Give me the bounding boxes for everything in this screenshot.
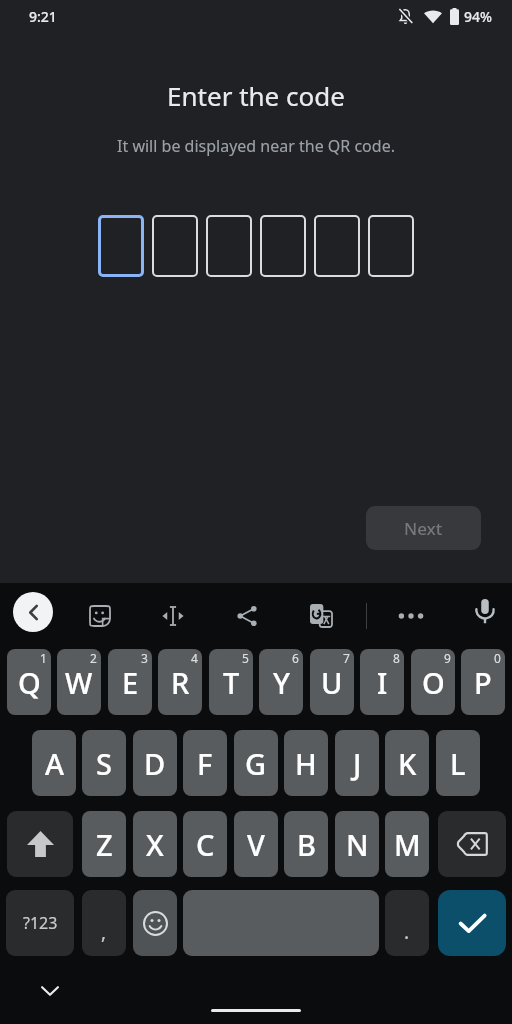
staticText: 0 (494, 650, 501, 666)
button[interactable] (314, 215, 360, 277)
button[interactable]: . (385, 890, 429, 956)
staticText: It will be displayed near the QR code. (0, 135, 512, 157)
staticText: C (196, 825, 215, 864)
staticText: 5 (242, 650, 249, 666)
staticText: U (321, 663, 343, 702)
staticText: Next (404, 517, 443, 540)
button[interactable] (206, 215, 252, 277)
button[interactable]: I (360, 649, 404, 715)
staticText: N (346, 825, 369, 864)
staticText: O (422, 663, 445, 702)
button[interactable]: ?123 (6, 890, 74, 956)
button[interactable]: E (108, 649, 152, 715)
button[interactable]: , (82, 890, 126, 956)
staticText: A (45, 744, 64, 783)
button[interactable] (13, 592, 53, 632)
staticText: D (144, 744, 166, 783)
button[interactable]: L (436, 730, 480, 796)
button[interactable] (476, 599, 494, 624)
button[interactable]: M (385, 811, 429, 877)
button[interactable]: F (183, 730, 227, 796)
staticText: 3 (141, 650, 148, 666)
staticText: G (245, 744, 267, 783)
button[interactable]: Z (82, 811, 126, 877)
staticText: . (404, 919, 410, 945)
staticText: , (101, 919, 107, 945)
staticText: ?123 (23, 912, 58, 934)
staticText: Z (96, 825, 113, 864)
button[interactable] (7, 811, 73, 877)
button[interactable] (152, 215, 198, 277)
staticText: 6 (292, 650, 299, 666)
staticText: 9 (444, 650, 451, 666)
button[interactable]: J (335, 730, 379, 796)
button[interactable] (237, 606, 257, 626)
button[interactable]: Q (7, 649, 51, 715)
button[interactable] (98, 215, 144, 277)
staticText: 9:21 (29, 7, 57, 26)
button[interactable]: X (133, 811, 177, 877)
staticText: W (65, 663, 93, 702)
staticText: F (197, 744, 213, 783)
button[interactable]: P (461, 649, 505, 715)
staticText: 4 (191, 650, 198, 666)
button[interactable]: S (82, 730, 126, 796)
button[interactable]: Y (259, 649, 303, 715)
button[interactable]: V (234, 811, 278, 877)
staticText: J (353, 744, 362, 783)
staticText: 7 (343, 650, 350, 666)
button[interactable]: O (411, 649, 455, 715)
button[interactable] (183, 890, 379, 956)
staticText: E (122, 663, 139, 702)
button[interactable] (41, 986, 59, 996)
button[interactable] (310, 604, 333, 628)
button[interactable]: A (32, 730, 76, 796)
button[interactable] (260, 215, 306, 277)
button[interactable]: C (183, 811, 227, 877)
staticText: S (96, 744, 112, 783)
staticText: R (171, 663, 190, 702)
staticText: B (297, 825, 316, 864)
staticText: X (146, 825, 164, 864)
staticText: I (377, 663, 388, 702)
button[interactable]: T (209, 649, 253, 715)
staticText: M (394, 825, 421, 864)
button[interactable] (89, 605, 111, 627)
staticText: L (450, 744, 466, 783)
staticText: Q (18, 663, 41, 702)
button[interactable]: H (284, 730, 328, 796)
staticText: 2 (90, 650, 97, 666)
staticText: Enter the code (0, 78, 512, 113)
button[interactable]: N (335, 811, 379, 877)
staticText: K (398, 744, 417, 783)
button[interactable]: W (57, 649, 101, 715)
button[interactable]: G (234, 730, 278, 796)
button[interactable] (133, 890, 177, 956)
staticText: 1 (40, 650, 47, 666)
staticText: Y (273, 663, 290, 702)
button[interactable] (399, 613, 423, 619)
staticText: 94% (464, 7, 492, 26)
button[interactable]: K (385, 730, 429, 796)
button[interactable]: D (133, 730, 177, 796)
button[interactable]: B (284, 811, 328, 877)
staticText: T (223, 663, 240, 702)
staticText: V (247, 825, 265, 864)
button[interactable]: R (158, 649, 202, 715)
button[interactable] (162, 606, 184, 626)
button[interactable] (368, 215, 414, 277)
staticText: 8 (393, 650, 400, 666)
button[interactable] (438, 811, 506, 877)
staticText: H (295, 744, 317, 783)
button[interactable] (438, 890, 506, 956)
button[interactable]: U (310, 649, 354, 715)
staticText: P (474, 663, 492, 702)
button[interactable]: Next (366, 506, 481, 550)
